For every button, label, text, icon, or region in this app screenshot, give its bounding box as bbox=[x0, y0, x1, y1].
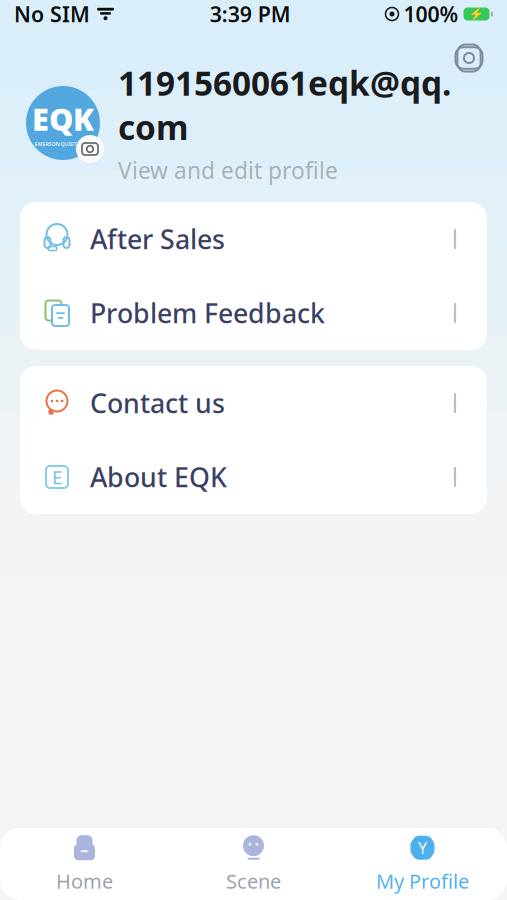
staticText: View and edit profile bbox=[118, 155, 338, 185]
staticText: Home bbox=[56, 868, 113, 894]
button[interactable]: Home bbox=[0, 828, 169, 900]
staticText: No SIM bbox=[14, 0, 90, 28]
staticText: About EQK bbox=[90, 459, 227, 495]
staticText: After Sales bbox=[90, 221, 225, 257]
staticText: 3:39 PM bbox=[210, 0, 291, 28]
button[interactable]: E bbox=[20, 440, 487, 514]
staticText: My Profile bbox=[376, 868, 469, 894]
button[interactable]: EQK bbox=[0, 80, 507, 166]
staticText: EQK bbox=[32, 99, 94, 139]
button[interactable]: Scene bbox=[169, 828, 338, 900]
staticText: 1191560061eqk@qq.com bbox=[118, 61, 451, 149]
button[interactable]: Problem Feedback bbox=[20, 276, 487, 350]
staticText: Contact us bbox=[90, 385, 225, 421]
button[interactable]: Settings bbox=[447, 36, 491, 80]
button[interactable]: Contact us bbox=[20, 366, 487, 440]
staticText: Problem Feedback bbox=[90, 295, 325, 331]
staticText: Y bbox=[418, 837, 427, 858]
staticText: EMERSON QUIET KOOL bbox=[34, 140, 91, 147]
button[interactable]: Y bbox=[338, 828, 507, 900]
staticText: E bbox=[52, 465, 62, 489]
staticText: 100% bbox=[403, 0, 458, 28]
staticText: Scene bbox=[226, 868, 281, 894]
staticText: ⚡ bbox=[469, 7, 484, 21]
button[interactable]: After Sales bbox=[20, 202, 487, 276]
